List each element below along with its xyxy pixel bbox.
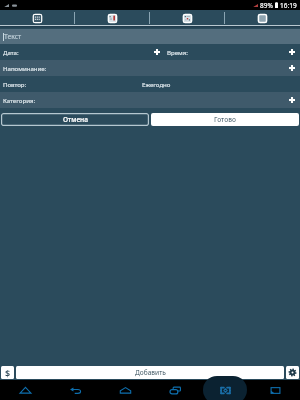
- staticText: Отмена: [63, 115, 88, 124]
- staticText: 89%: [260, 1, 273, 10]
- button[interactable]: Month view: [0, 10, 75, 25]
- button[interactable]: Split screen: [250, 380, 300, 400]
- staticText: 16:19: [280, 1, 297, 10]
- button[interactable]: Добавить: [16, 366, 284, 379]
- button[interactable]: Week view: [75, 10, 150, 25]
- button[interactable]: Готово: [151, 113, 299, 126]
- button[interactable]: [163, 76, 300, 92]
- button[interactable]: Settings: [286, 366, 299, 379]
- button[interactable]: Screenshot: [200, 380, 250, 400]
- staticText: Категория:: [3, 96, 36, 104]
- button[interactable]: Повтор:: [0, 76, 163, 92]
- staticText: Дата:: [3, 48, 19, 56]
- button[interactable]: Home: [100, 380, 150, 400]
- button[interactable]: Отмена: [1, 113, 149, 126]
- staticText: Напоминание:: [3, 64, 47, 72]
- staticText: Текст: [4, 32, 22, 41]
- button[interactable]: Текст: [0, 29, 300, 44]
- button[interactable]: Agenda view: [225, 10, 300, 25]
- button[interactable]: Menu: [0, 380, 50, 400]
- button[interactable]: Напоминание:: [0, 60, 163, 76]
- staticText: $: [5, 367, 11, 379]
- button[interactable]: [163, 60, 300, 76]
- staticText: Добавить: [135, 368, 166, 377]
- button[interactable]: Время:: [163, 44, 300, 60]
- button[interactable]: Back: [50, 380, 100, 400]
- button[interactable]: Currency: [1, 366, 14, 379]
- button[interactable]: [163, 92, 300, 108]
- button[interactable]: Day view: [150, 10, 225, 25]
- staticText: Повтор:: [3, 80, 27, 88]
- button[interactable]: Категория:: [0, 92, 163, 108]
- staticText: Готово: [214, 115, 236, 124]
- button[interactable]: Recent apps: [150, 380, 200, 400]
- button[interactable]: Дата:: [0, 44, 163, 60]
- staticText: Время:: [167, 48, 188, 56]
- staticText: Ежегодно: [142, 80, 171, 88]
